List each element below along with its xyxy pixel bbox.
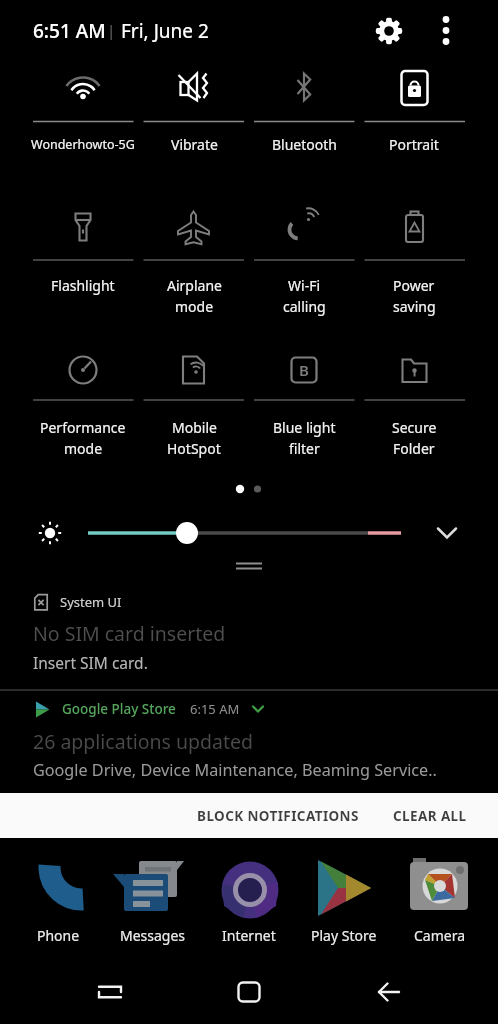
- button[interactable]: [359, 965, 419, 1020]
- button[interactable]: [113, 858, 193, 944]
- staticText: Mobile: [172, 418, 217, 437]
- staticText: Wi-Fi: [288, 276, 321, 295]
- button[interactable]: [249, 200, 360, 322]
- staticText: Wonderhowto-5G: [31, 136, 135, 153]
- button[interactable]: [0, 692, 498, 788]
- button[interactable]: [138, 344, 249, 464]
- staticText: Insert SIM card.: [33, 652, 148, 673]
- staticText: CLEAR ALL: [393, 807, 467, 825]
- button[interactable]: [138, 200, 249, 322]
- staticText: Google Play Store: [62, 700, 176, 718]
- staticText: 6:15 AM: [190, 700, 240, 718]
- staticText: mode: [64, 439, 103, 458]
- button[interactable]: [249, 344, 360, 464]
- button[interactable]: [209, 858, 289, 944]
- staticText: Secure: [392, 418, 437, 437]
- button[interactable]: [28, 200, 139, 322]
- button[interactable]: [28, 344, 139, 464]
- button[interactable]: BLOCK NOTIFICATIONS: [180, 793, 376, 838]
- button[interactable]: [18, 858, 98, 944]
- staticText: 26 applications updated: [33, 728, 253, 755]
- button[interactable]: [219, 965, 279, 1020]
- staticText: Bluetooth: [272, 135, 337, 154]
- staticText: filter: [289, 439, 320, 458]
- staticText: System UI: [60, 593, 122, 611]
- button[interactable]: CLEAR ALL: [376, 793, 498, 838]
- staticText: Vibrate: [171, 135, 218, 154]
- staticText: Blue light: [273, 418, 336, 437]
- staticText: Play Store: [311, 926, 377, 945]
- staticText: Performance: [40, 418, 126, 437]
- staticText: Fri, June 2: [121, 18, 209, 44]
- staticText: B: [299, 360, 309, 380]
- button[interactable]: [249, 64, 360, 160]
- staticText: calling: [283, 297, 326, 316]
- button[interactable]: [400, 858, 480, 944]
- staticText: Phone: [37, 926, 80, 945]
- staticText: 6:51 AM: [33, 18, 106, 44]
- button[interactable]: [433, 519, 461, 547]
- staticText: Folder: [393, 439, 435, 458]
- staticText: Airplane: [167, 276, 222, 295]
- button[interactable]: [359, 344, 470, 464]
- staticText: Internet: [222, 926, 276, 945]
- staticText: Google Drive, Device Maintenance, Beamin…: [33, 759, 437, 781]
- button[interactable]: [304, 858, 384, 944]
- button[interactable]: [0, 580, 498, 688]
- staticText: Power: [393, 276, 435, 295]
- staticText: mode: [175, 297, 214, 316]
- staticText: No SIM card inserted: [33, 620, 226, 647]
- button[interactable]: [375, 15, 403, 47]
- button[interactable]: [80, 965, 140, 1020]
- button[interactable]: [359, 200, 470, 322]
- staticText: HotSpot: [167, 439, 221, 458]
- staticText: Messages: [120, 926, 186, 945]
- staticText: Camera: [414, 926, 466, 945]
- button[interactable]: [28, 64, 139, 160]
- staticText: Portrait: [389, 135, 439, 154]
- button[interactable]: [359, 64, 470, 160]
- button[interactable]: [80, 515, 410, 551]
- staticText: Flashlight: [51, 276, 115, 295]
- staticText: saving: [393, 297, 436, 316]
- staticText: |: [107, 20, 116, 40]
- staticText: BLOCK NOTIFICATIONS: [197, 807, 359, 825]
- button[interactable]: [138, 64, 249, 160]
- button[interactable]: [432, 15, 460, 47]
